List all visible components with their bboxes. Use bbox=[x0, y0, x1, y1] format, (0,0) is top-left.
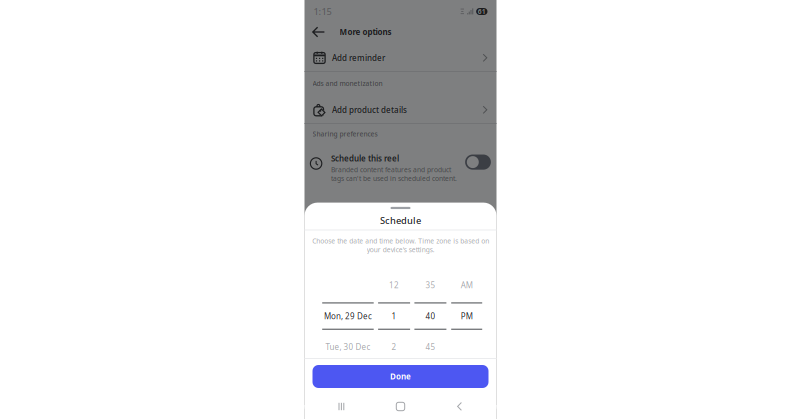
staticText: Schedule this reel bbox=[331, 153, 399, 164]
staticText: Mon, 29 Dec bbox=[324, 311, 372, 321]
staticText: Schedule bbox=[380, 214, 421, 226]
staticText: 2 bbox=[392, 342, 397, 352]
staticText: Add reminder bbox=[332, 53, 385, 63]
staticText: Choose the date and time below. Time zon… bbox=[312, 236, 489, 254]
button[interactable]: Back bbox=[308, 20, 328, 44]
staticText: More options bbox=[339, 27, 391, 37]
button[interactable]: Add product details bbox=[304, 97, 496, 123]
button[interactable]: Home bbox=[378, 396, 422, 416]
staticText: 1:15 bbox=[313, 5, 331, 18]
staticText: 40 bbox=[425, 311, 435, 321]
staticText: 61 bbox=[478, 7, 486, 16]
button[interactable]: Recent apps bbox=[319, 396, 363, 416]
staticText: Done bbox=[390, 371, 411, 382]
staticText: Ads and monetization bbox=[312, 79, 382, 88]
staticText: 35 bbox=[425, 280, 435, 290]
staticText: Sharing preferences bbox=[312, 130, 377, 138]
staticText: 1 bbox=[392, 311, 397, 321]
staticText: PM bbox=[461, 311, 473, 321]
staticText: Add product details bbox=[332, 105, 407, 115]
button[interactable]: Back bbox=[437, 396, 481, 416]
staticText: 45 bbox=[425, 342, 435, 352]
staticText: Branded content features and product tag… bbox=[331, 165, 457, 183]
staticText: AM bbox=[461, 280, 473, 290]
button[interactable]: Done bbox=[312, 365, 488, 388]
button[interactable]: Add reminder bbox=[304, 45, 496, 71]
staticText: Tue, 30 Dec bbox=[325, 342, 370, 352]
staticText: 12 bbox=[389, 280, 399, 290]
button[interactable]: Schedule this reel bbox=[465, 154, 491, 170]
